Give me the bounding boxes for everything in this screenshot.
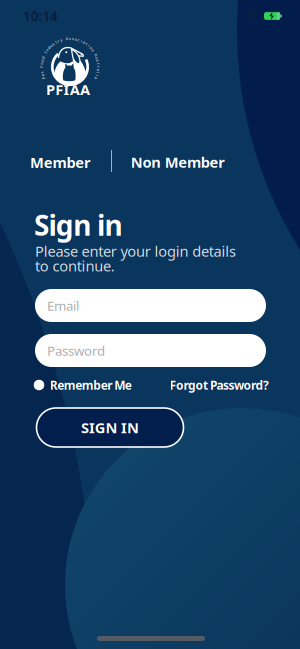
staticText: A (65, 36, 68, 41)
staticText: a (83, 40, 85, 45)
staticText: t (86, 41, 87, 46)
staticText: SIGN IN (81, 418, 139, 437)
staticText: o (75, 36, 77, 42)
staticText: Member (30, 152, 91, 172)
staticText: s (52, 41, 54, 46)
staticText: t (98, 61, 99, 66)
staticText: 10:14 (23, 7, 58, 25)
button[interactable]: Member (10, 147, 110, 177)
staticText: to continue. (35, 256, 115, 276)
staticText: o (90, 45, 92, 50)
staticText: Remember Me (50, 377, 132, 393)
staticText: u (50, 43, 52, 48)
staticText: A (94, 52, 97, 58)
staticText: i (88, 43, 89, 48)
staticText: o (41, 61, 43, 66)
button[interactable]: Remember Me (0, 375, 170, 395)
staticText: a (95, 75, 97, 81)
staticText: n (46, 47, 48, 53)
staticText: r (57, 38, 59, 44)
staticText: Please enter your login details (35, 241, 236, 261)
staticText: s (97, 58, 99, 63)
staticText: Password (47, 342, 105, 359)
staticText: r (97, 64, 99, 69)
staticText: I (45, 50, 46, 55)
staticText: a (97, 67, 99, 72)
staticText (44, 52, 45, 58)
button[interactable]: Non Member (118, 147, 238, 177)
staticText: c (78, 37, 80, 42)
staticText (94, 50, 95, 55)
staticText: i (97, 73, 98, 78)
staticText: Sign in (34, 206, 122, 244)
staticText: s (69, 36, 71, 41)
staticText: s (72, 36, 74, 41)
staticText (41, 67, 42, 72)
staticText: Forgot Password? (169, 377, 269, 393)
staticText: d (42, 55, 44, 60)
staticText: F (40, 64, 42, 69)
button[interactable]: SIGN IN (36, 408, 183, 447)
staticText: o (41, 58, 43, 63)
staticText: y (60, 37, 62, 42)
staticText: e (42, 73, 44, 78)
staticText: PFIAA (46, 80, 90, 99)
staticText: t (55, 40, 56, 45)
staticText: i (81, 38, 82, 44)
staticText: u (96, 55, 98, 60)
staticText: n (92, 47, 94, 53)
button[interactable]: Forgot Password? (140, 375, 300, 395)
staticText: Email (47, 297, 79, 314)
staticText: P (43, 75, 45, 81)
staticText: d (48, 45, 50, 50)
staticText: Non Member (131, 152, 225, 172)
